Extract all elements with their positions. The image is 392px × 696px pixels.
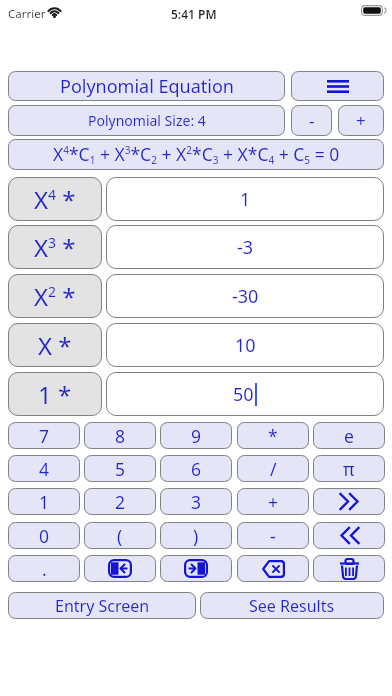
button[interactable]: π [313, 455, 385, 482]
button[interactable]: X3 * [8, 225, 102, 269]
staticText: + [268, 490, 279, 514]
staticText: -30 [232, 284, 259, 309]
button[interactable]: - [291, 105, 332, 136]
staticText: 4 [39, 457, 50, 481]
button[interactable]: e [313, 422, 385, 449]
button[interactable] [84, 555, 156, 582]
staticText: 10 [235, 333, 256, 358]
button[interactable] [313, 555, 385, 582]
staticText: * [268, 424, 278, 448]
staticText: 6 [191, 457, 202, 481]
button[interactable]: Polynomial Size: 4 [8, 105, 285, 136]
button[interactable]: X4 * [8, 177, 102, 221]
staticText: - [309, 109, 315, 132]
staticText: / [270, 457, 277, 481]
staticText: X * [38, 329, 72, 362]
staticText: ( [117, 524, 123, 548]
button[interactable]: Polynomial Equation [8, 71, 285, 101]
staticText: 7 [39, 424, 50, 448]
staticText: 1 * [38, 378, 72, 411]
button[interactable]: 8 [84, 422, 156, 449]
staticText: 8 [115, 424, 126, 448]
button[interactable]: ) [160, 522, 232, 549]
staticText: X2 * [34, 280, 76, 313]
button[interactable]: * [237, 422, 309, 449]
button[interactable]: 7 [8, 422, 80, 449]
staticText: -3 [237, 235, 254, 260]
button[interactable]: + [338, 105, 384, 136]
staticText: Entry Screen [55, 595, 150, 617]
staticText: See Results [249, 595, 335, 617]
button[interactable]: Entry Screen [8, 592, 196, 619]
button[interactable]: X * [8, 323, 102, 367]
staticText: X3 * [34, 231, 76, 264]
button[interactable]: 1 [106, 177, 384, 221]
staticText: 1 [240, 187, 251, 212]
button[interactable]: . [8, 555, 80, 582]
button[interactable]: -3 [106, 225, 384, 269]
button[interactable]: 6 [160, 455, 232, 482]
button[interactable] [313, 488, 385, 515]
button[interactable]: 3 [160, 488, 232, 515]
button[interactable]: 5 [84, 455, 156, 482]
button[interactable]: 1 * [8, 372, 102, 416]
staticText: Polynomial Equation [60, 74, 234, 99]
staticText: X4*C1 + X3*C2 + X2*C3 + X*C4 + C5 = 0 [53, 142, 340, 167]
staticText: 3 [191, 490, 202, 514]
button[interactable]: 2 [84, 488, 156, 515]
button[interactable] [291, 71, 384, 101]
staticText: π [343, 457, 355, 481]
staticText: . [42, 557, 47, 581]
staticText: 0 [39, 524, 50, 548]
button[interactable]: / [237, 455, 309, 482]
button[interactable]: 9 [160, 422, 232, 449]
staticText: 5 [115, 457, 126, 481]
button[interactable]: 50 [106, 372, 384, 416]
button[interactable] [160, 555, 232, 582]
staticText: 1 [39, 490, 50, 514]
button[interactable]: See Results [200, 592, 384, 619]
button[interactable] [313, 522, 385, 549]
button[interactable]: 1 [8, 488, 80, 515]
button[interactable]: + [237, 488, 309, 515]
button[interactable]: 4 [8, 455, 80, 482]
button[interactable] [237, 555, 309, 582]
button[interactable]: - [237, 522, 309, 549]
button[interactable]: -30 [106, 274, 384, 318]
button[interactable]: ( [84, 522, 156, 549]
button[interactable]: 0 [8, 522, 80, 549]
staticText: 2 [115, 490, 126, 514]
staticText: - [270, 524, 276, 548]
staticText: 9 [191, 424, 202, 448]
button[interactable]: 10 [106, 323, 384, 367]
button[interactable]: X2 * [8, 274, 102, 318]
staticText: + [356, 109, 366, 132]
staticText: e [344, 424, 354, 448]
staticText: X4 * [34, 183, 76, 216]
staticText: 5:41 PM [171, 6, 217, 22]
button[interactable]: X4*C1 + X3*C2 + X2*C3 + X*C4 + C5 = 0 [8, 139, 384, 170]
staticText: ) [193, 524, 199, 548]
staticText: Polynomial Size: 4 [88, 111, 206, 130]
staticText: Carrier [8, 6, 46, 22]
staticText: 50 [233, 382, 254, 407]
